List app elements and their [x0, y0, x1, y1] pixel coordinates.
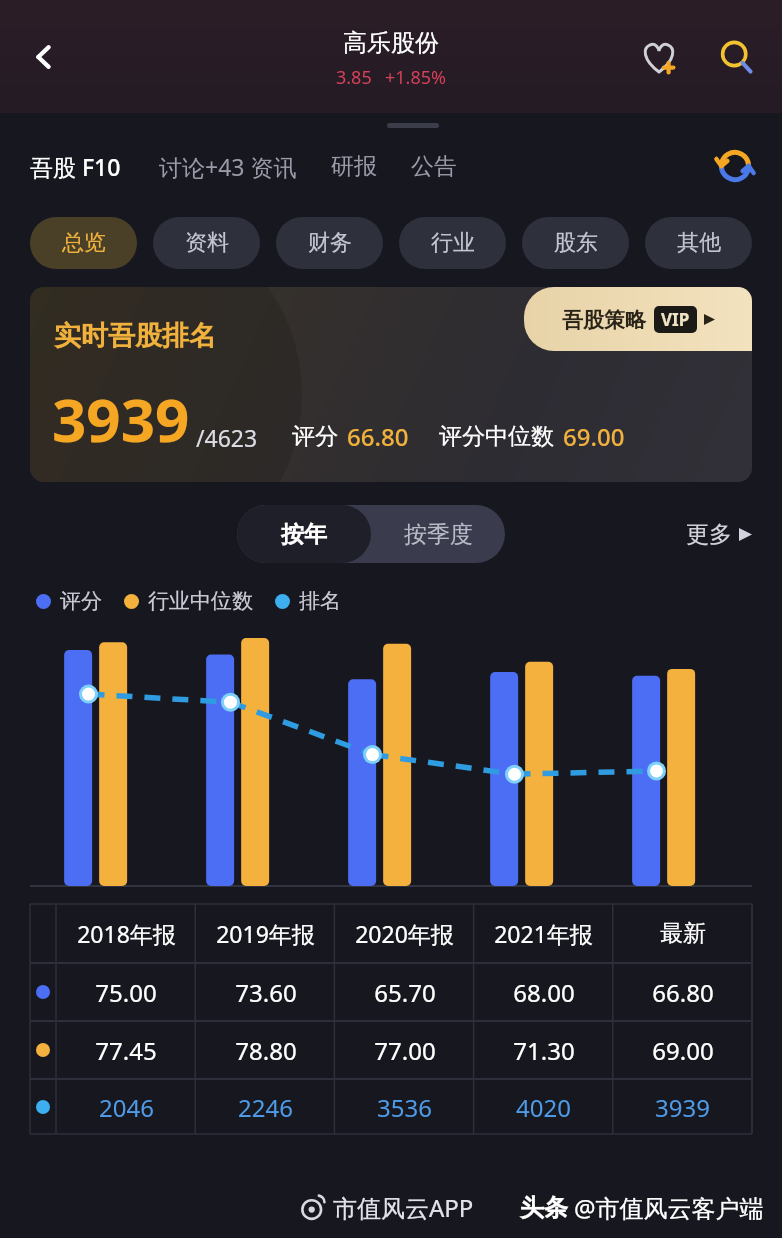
staticText: 3536 — [377, 1091, 432, 1124]
staticText: 吾股策略 — [562, 307, 646, 333]
staticText: 73.60 — [235, 976, 297, 1009]
button[interactable]: 讨论+43 资讯 — [159, 145, 297, 188]
staticText: 2018年报 — [77, 918, 176, 949]
staticText: 财务 — [308, 229, 352, 257]
staticText: 77.45 — [95, 1034, 157, 1067]
button[interactable]: Add to favorites — [632, 31, 686, 85]
staticText: 66.80 — [652, 976, 714, 1009]
button[interactable]: 吾股策略 — [524, 287, 752, 351]
staticText: @市值风云客户端 — [574, 1191, 764, 1224]
button[interactable]: 股东 — [522, 217, 629, 269]
staticText: 最新 — [660, 919, 706, 948]
staticText: 行业 — [431, 229, 475, 257]
staticText: /4623 — [196, 422, 258, 453]
button[interactable]: 财务 — [276, 217, 383, 269]
staticText: 2021年报 — [494, 918, 593, 949]
staticText: 66.80 — [347, 420, 409, 453]
staticText: 3.85 — [336, 65, 372, 90]
staticText: 2019年报 — [216, 918, 315, 949]
staticText: 公告 — [411, 152, 457, 181]
staticText: 讨论+43 资讯 — [159, 151, 297, 182]
staticText: 65.70 — [374, 976, 436, 1009]
staticText: 3939 — [655, 1091, 710, 1124]
button[interactable]: 公告 — [411, 146, 457, 187]
button[interactable]: 吾股策略 — [30, 287, 752, 482]
staticText: 评分中位数 — [439, 422, 554, 451]
button[interactable]: 行业 — [399, 217, 506, 269]
staticText: 市值风云APP — [333, 1191, 474, 1224]
button[interactable]: Refresh — [706, 137, 764, 195]
staticText: 实时吾股排名 — [54, 319, 216, 353]
button[interactable]: 研报 — [331, 146, 377, 187]
staticText: 排名 — [299, 588, 341, 614]
staticText: 研报 — [331, 152, 377, 181]
button[interactable]: 其他 — [645, 217, 752, 269]
button[interactable]: 按年 — [237, 505, 371, 563]
staticText: 头条 — [520, 1193, 568, 1223]
staticText: 68.00 — [513, 976, 575, 1009]
button[interactable]: 资料 — [153, 217, 260, 269]
staticText: +1.85% — [385, 65, 446, 90]
button[interactable]: 按季度 — [371, 505, 505, 563]
button[interactable]: Back — [20, 33, 68, 81]
staticText: 2020年报 — [355, 918, 454, 949]
staticText: 按年 — [281, 520, 327, 549]
button[interactable]: Search — [710, 31, 764, 85]
staticText: 2046 — [99, 1091, 154, 1124]
staticText: 按季度 — [404, 520, 473, 549]
button[interactable]: 吾股 F10 — [30, 145, 121, 188]
staticText: VIP — [661, 308, 690, 331]
staticText: 股东 — [554, 229, 598, 257]
staticText: 其他 — [677, 229, 721, 257]
button[interactable]: 总览 — [30, 217, 137, 269]
staticText: 69.00 — [652, 1034, 714, 1067]
staticText: 75.00 — [95, 976, 157, 1009]
staticText: 评分 — [292, 422, 338, 451]
staticText: 资料 — [185, 229, 229, 257]
staticText: 高乐股份 — [343, 28, 439, 58]
staticText: 总览 — [62, 229, 106, 257]
staticText: 行业中位数 — [148, 588, 253, 614]
staticText: 3939 — [52, 378, 190, 460]
button[interactable]: 更多 — [686, 520, 752, 549]
staticText: 4020 — [516, 1091, 571, 1124]
staticText: 评分 — [60, 588, 102, 614]
staticText: 71.30 — [513, 1034, 575, 1067]
staticText: 吾股 F10 — [30, 151, 121, 182]
staticText: 69.00 — [563, 420, 625, 453]
staticText: 77.00 — [374, 1034, 436, 1067]
staticText: 更多 — [686, 520, 732, 549]
staticText: 2246 — [238, 1091, 293, 1124]
staticText: 78.80 — [235, 1034, 297, 1067]
